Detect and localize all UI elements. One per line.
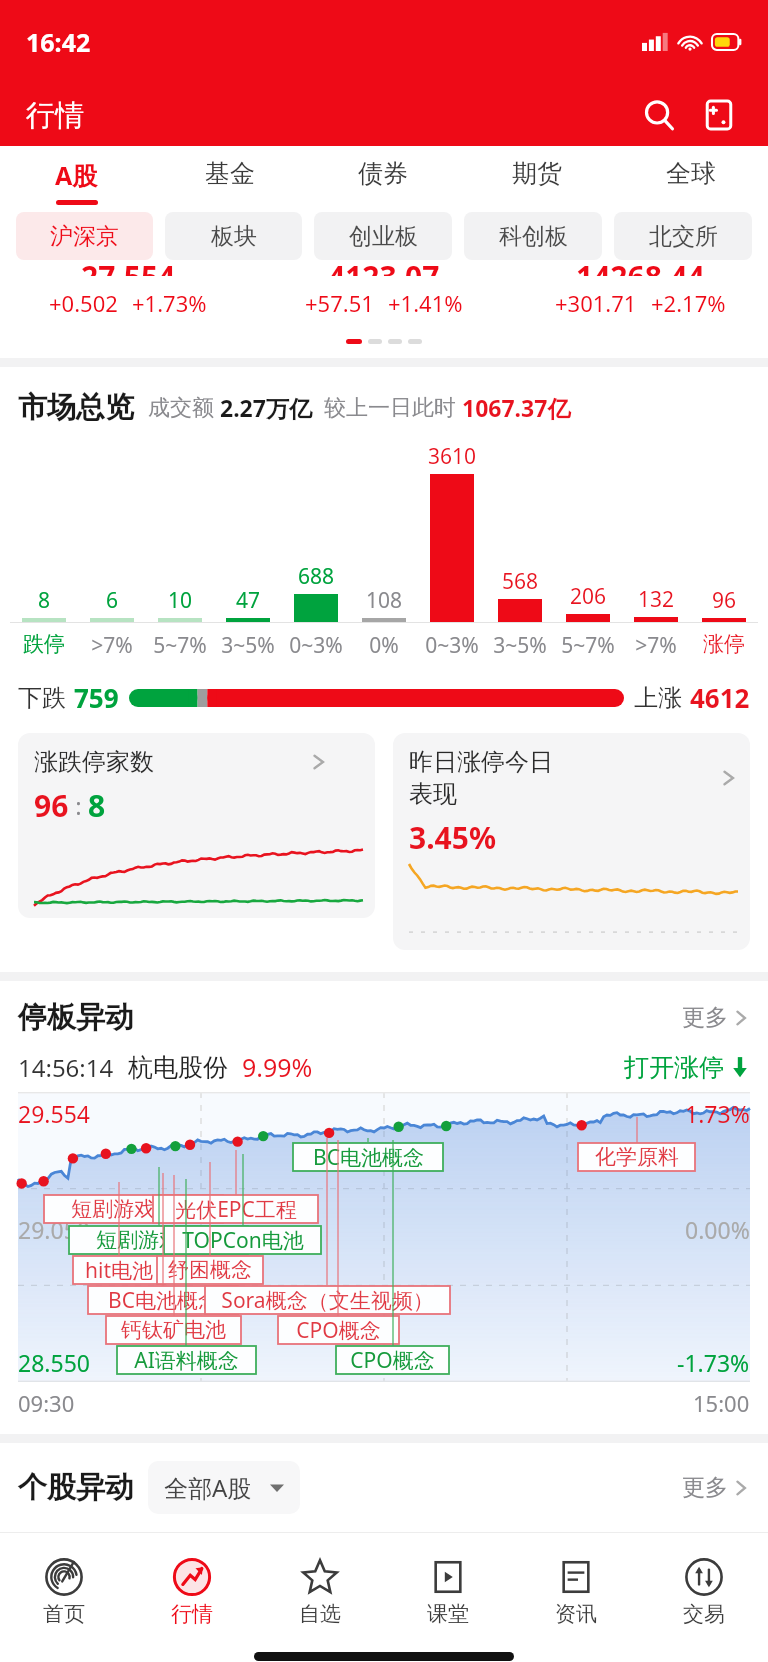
- staticText: 科创板: [499, 222, 568, 251]
- button[interactable]: 科创板: [464, 212, 602, 260]
- staticText: 较上一日此时: [324, 394, 456, 422]
- button[interactable]: CPO概念: [336, 1346, 449, 1374]
- staticText: 29.554: [18, 1098, 90, 1129]
- staticText: 6: [106, 586, 119, 615]
- staticText: 10: [168, 586, 193, 615]
- staticText: +1.73%: [132, 288, 207, 318]
- staticText: Sora概念（文生视频）: [221, 1286, 434, 1314]
- staticText: AI语料概念: [134, 1346, 239, 1374]
- staticText: BC电池概念: [313, 1143, 424, 1171]
- button[interactable]: 搜索: [636, 92, 682, 138]
- staticText: 债券: [358, 158, 408, 189]
- staticText: 29.050: [18, 1214, 90, 1245]
- button[interactable]: 钙钛矿电池: [106, 1316, 241, 1344]
- staticText: 杭电股份: [128, 1052, 228, 1083]
- staticText: 光伏EPC工程: [175, 1195, 297, 1223]
- button[interactable]: CPO概念: [278, 1316, 399, 1344]
- button[interactable]: 化学原料: [578, 1143, 695, 1171]
- button[interactable]: 交易: [640, 1532, 768, 1650]
- staticText: 短剧游戏概念: [96, 1227, 222, 1253]
- staticText: 打开涨停: [624, 1052, 724, 1083]
- button[interactable]: 行情: [128, 1532, 256, 1650]
- staticText: 4612: [690, 680, 750, 715]
- staticText: :: [69, 789, 88, 822]
- staticText: 96: [712, 586, 737, 615]
- staticText: +301.71: [555, 288, 637, 318]
- staticText: 行情: [171, 1601, 213, 1627]
- button[interactable]: 停板异动: [18, 999, 750, 1036]
- staticText: 16:42: [26, 25, 91, 59]
- staticText: 108: [366, 586, 403, 615]
- staticText: 27.554: [81, 256, 176, 276]
- staticText: CPO概念: [296, 1316, 381, 1344]
- staticText: 上涨: [634, 683, 682, 713]
- staticText: 9.99%: [242, 1050, 313, 1084]
- staticText: 0~3%: [289, 631, 343, 660]
- staticText: 交易: [683, 1601, 725, 1627]
- staticText: TOPCon电池: [182, 1226, 304, 1254]
- button[interactable]: 北交所: [614, 212, 752, 260]
- button[interactable]: Sora概念（文生视频）: [205, 1286, 450, 1314]
- button[interactable]: 短剧游戏概念: [44, 1195, 223, 1223]
- staticText: 短剧游戏概念: [71, 1196, 197, 1222]
- button[interactable]: 添加自选: [696, 92, 742, 138]
- button[interactable]: hit电池: [73, 1256, 165, 1284]
- staticText: 0%: [369, 631, 399, 660]
- staticText: 跌停: [23, 631, 65, 657]
- button[interactable]: 债券: [306, 146, 460, 212]
- staticText: 基金: [205, 158, 255, 189]
- staticText: 3.45%: [409, 817, 496, 858]
- button[interactable]: 涨跌停家数: [18, 733, 375, 918]
- staticText: 688: [298, 562, 335, 591]
- staticText: 资讯: [555, 1601, 597, 1627]
- button[interactable]: 纾困概念: [157, 1256, 263, 1284]
- button[interactable]: 期货: [460, 146, 614, 212]
- button[interactable]: 基金: [153, 146, 306, 212]
- button[interactable]: 课堂: [384, 1532, 512, 1650]
- button[interactable]: 自选: [256, 1532, 384, 1650]
- staticText: 14268.44: [576, 256, 705, 276]
- staticText: 首页: [43, 1601, 85, 1627]
- staticText: 化学原料: [595, 1144, 679, 1170]
- button[interactable]: 全部A股: [148, 1461, 300, 1514]
- staticText: 5~7%: [153, 631, 207, 660]
- staticText: 759: [74, 680, 119, 715]
- button[interactable]: 板块: [165, 212, 302, 260]
- staticText: +2.17%: [651, 288, 726, 318]
- staticText: 3~5%: [493, 631, 547, 660]
- staticText: 28.550: [18, 1347, 90, 1378]
- staticText: 期货: [512, 158, 562, 189]
- button[interactable]: 首页: [0, 1532, 128, 1650]
- button[interactable]: 昨日涨停今日表现: [393, 733, 750, 950]
- staticText: 8: [38, 586, 51, 615]
- staticText: 北交所: [649, 222, 718, 251]
- button[interactable]: A股: [0, 146, 153, 212]
- staticText: 47: [236, 586, 261, 615]
- button[interactable]: 资讯: [512, 1532, 640, 1650]
- staticText: 全球: [666, 158, 716, 189]
- button[interactable]: AI语料概念: [117, 1346, 256, 1374]
- staticText: 1.73%: [685, 1098, 750, 1129]
- button[interactable]: 光伏EPC工程: [153, 1195, 318, 1223]
- staticText: >7%: [91, 631, 133, 660]
- button[interactable]: 更多: [682, 1473, 750, 1502]
- staticText: 昨日涨停今日表现: [409, 747, 564, 809]
- button[interactable]: 沪深京: [16, 212, 153, 260]
- staticText: 更多: [682, 1473, 728, 1502]
- button[interactable]: 创业板: [314, 212, 452, 260]
- staticText: 4123.07: [328, 256, 440, 276]
- staticText: 8: [88, 785, 106, 826]
- staticText: 创业板: [349, 222, 418, 251]
- staticText: 涨跌停家数: [34, 747, 154, 777]
- button[interactable]: BC电池概念: [293, 1143, 443, 1171]
- staticText: 09:30: [18, 1388, 75, 1418]
- button[interactable]: 短剧游戏概念: [69, 1226, 248, 1254]
- button[interactable]: TOPCon电池: [164, 1226, 321, 1254]
- staticText: -1.73%: [677, 1347, 750, 1378]
- staticText: >7%: [635, 631, 677, 660]
- button[interactable]: 全球: [614, 146, 768, 212]
- staticText: 钙钛矿电池: [121, 1317, 226, 1343]
- button[interactable]: BC电池概念: [88, 1286, 238, 1314]
- staticText: 全部A股: [164, 1471, 252, 1504]
- staticText: 3~5%: [221, 631, 275, 660]
